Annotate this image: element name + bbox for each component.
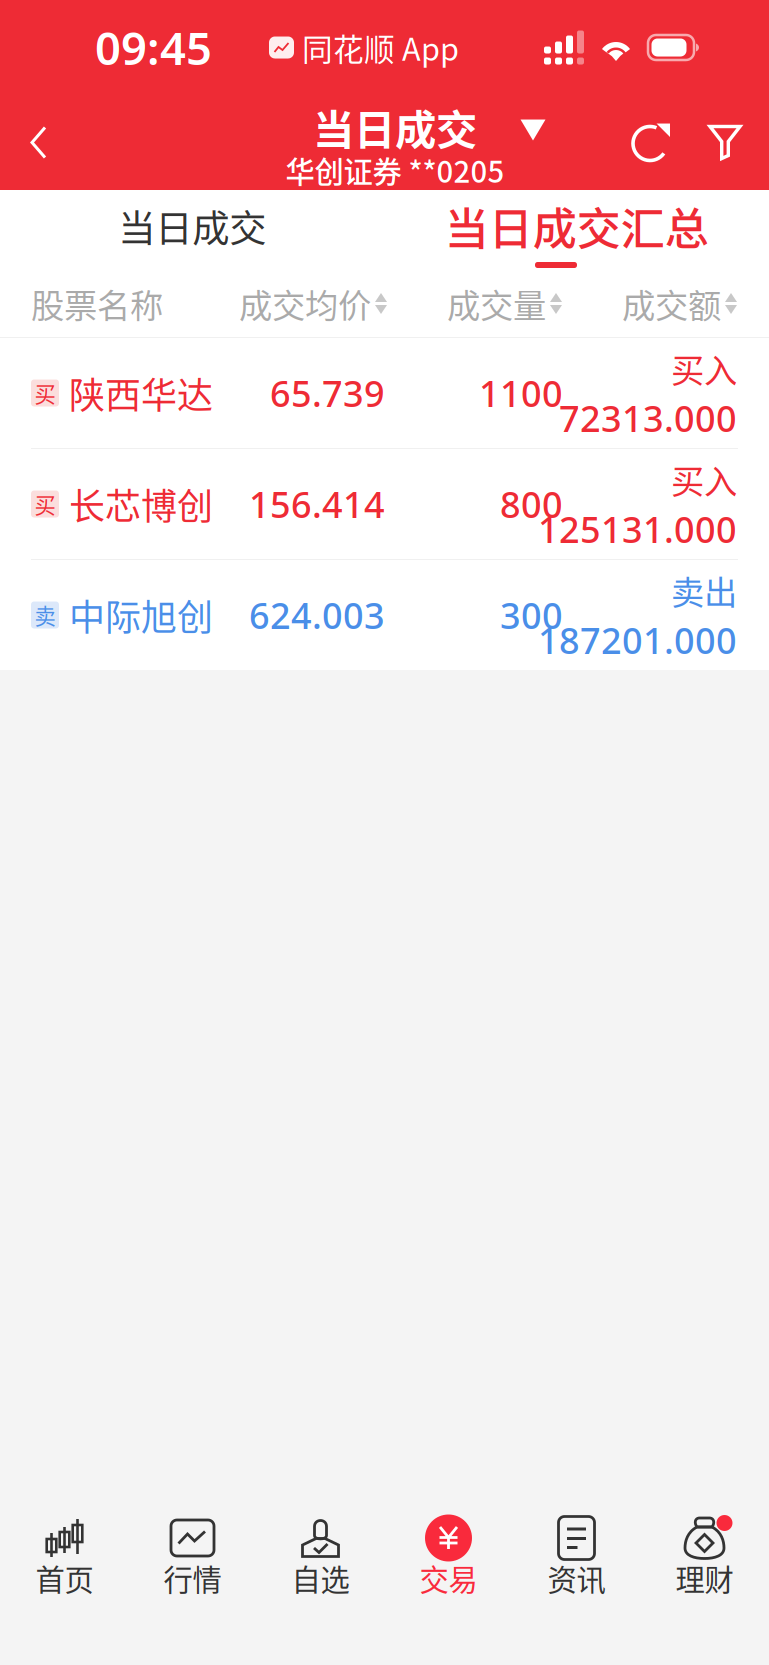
- staticText: 自选: [291, 1557, 349, 1599]
- staticText: 资讯: [547, 1557, 605, 1599]
- staticText: 同花顺 App: [302, 25, 459, 70]
- staticText: 首页: [35, 1557, 93, 1599]
- staticText: 买: [34, 489, 55, 519]
- staticText: 卖出: [671, 566, 737, 614]
- staticText: 股票名称: [31, 279, 163, 328]
- button[interactable]: 自选: [256, 1514, 384, 1592]
- button[interactable]: 交易: [384, 1514, 512, 1592]
- button[interactable]: 当日成交: [223, 101, 545, 184]
- staticText: 成交均价: [239, 279, 371, 328]
- staticText: 当日成交: [313, 97, 477, 157]
- button[interactable]: Back: [0, 95, 78, 190]
- staticText: 09:45: [95, 17, 212, 78]
- button[interactable]: Refresh: [631, 120, 675, 164]
- staticText: 理财: [675, 1557, 733, 1599]
- staticText: 当日成交: [118, 199, 266, 253]
- staticText: 72313.000: [559, 394, 737, 442]
- button[interactable]: 当日成交: [0, 190, 384, 262]
- staticText: 华创证券 **0205: [285, 149, 504, 191]
- button[interactable]: Filter: [708, 124, 742, 160]
- staticText: 行情: [163, 1557, 221, 1599]
- staticText: 中际旭创: [69, 589, 213, 641]
- button[interactable]: 买: [0, 338, 769, 448]
- button[interactable]: 行情: [128, 1514, 256, 1592]
- button[interactable]: 理财: [640, 1514, 768, 1592]
- staticText: 156.414: [249, 480, 385, 528]
- button[interactable]: 买: [0, 449, 769, 559]
- button[interactable]: 卖: [0, 560, 769, 670]
- staticText: 成交量: [447, 279, 546, 328]
- staticText: 300: [500, 591, 563, 639]
- staticText: 成交额: [622, 279, 721, 328]
- staticText: 买入: [671, 455, 737, 503]
- staticText: 买: [34, 378, 55, 408]
- staticText: 买入: [671, 344, 737, 392]
- staticText: 1100: [479, 369, 563, 417]
- button[interactable]: 资讯: [512, 1514, 640, 1592]
- staticText: 陕西华达: [69, 367, 213, 419]
- staticText: 65.739: [270, 369, 385, 417]
- button[interactable]: 首页: [0, 1514, 128, 1592]
- button[interactable]: 当日成交汇总: [384, 190, 769, 262]
- staticText: 187201.000: [538, 616, 737, 664]
- staticText: 卖: [34, 600, 55, 630]
- staticText: 长芯博创: [69, 478, 213, 530]
- staticText: 125131.000: [538, 505, 737, 553]
- staticText: 800: [500, 480, 563, 528]
- staticText: 交易: [419, 1557, 477, 1599]
- staticText: 当日成交汇总: [445, 194, 709, 258]
- staticText: 624.003: [249, 591, 385, 639]
